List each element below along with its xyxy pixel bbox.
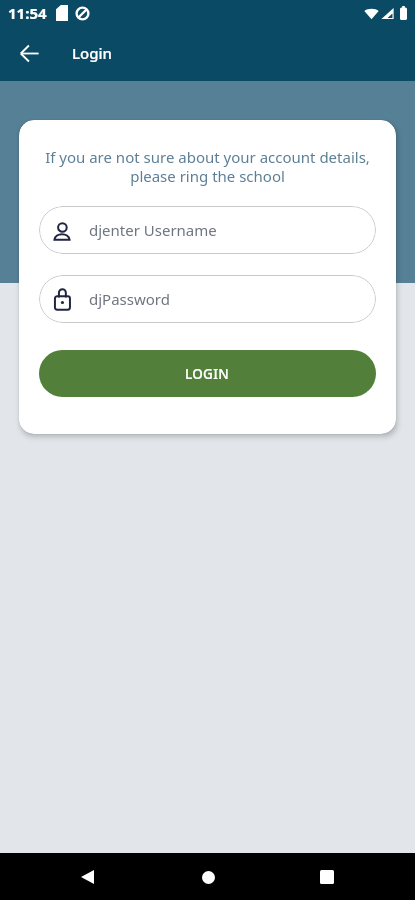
staticText: If you are not sure about your account d… xyxy=(39,147,376,186)
button[interactable]: Back xyxy=(69,859,105,895)
button[interactable]: Home xyxy=(190,859,226,895)
staticText: djPassword xyxy=(89,289,170,309)
staticText: Login xyxy=(72,43,112,63)
button[interactable]: djPassword xyxy=(39,275,376,323)
button[interactable]: LOGIN xyxy=(39,350,376,397)
staticText: LOGIN xyxy=(185,365,230,383)
button[interactable]: djenter Username xyxy=(39,206,376,254)
button[interactable]: Recent apps xyxy=(309,859,345,895)
staticText: 11:54 xyxy=(8,3,47,23)
staticText: djenter Username xyxy=(89,220,217,240)
button[interactable]: Back xyxy=(11,35,47,71)
